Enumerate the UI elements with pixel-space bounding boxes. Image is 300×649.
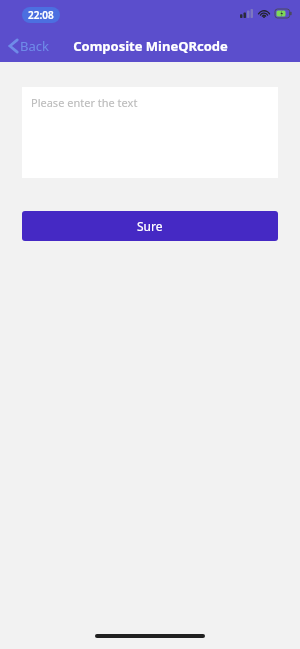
staticText: Sure [137, 218, 163, 234]
staticText: Composite MineQRcode [73, 37, 228, 55]
staticText: 22:08 [28, 8, 54, 22]
button[interactable]: Sure [22, 211, 278, 241]
other: Battery charging [275, 9, 292, 18]
other: Cellular signal [240, 9, 253, 18]
staticText: Please enter the text [31, 95, 138, 110]
staticText: Back [20, 37, 49, 55]
other: Wi-Fi [258, 9, 270, 18]
button[interactable]: Back [0, 33, 57, 59]
button[interactable]: Please enter the text [22, 87, 278, 178]
